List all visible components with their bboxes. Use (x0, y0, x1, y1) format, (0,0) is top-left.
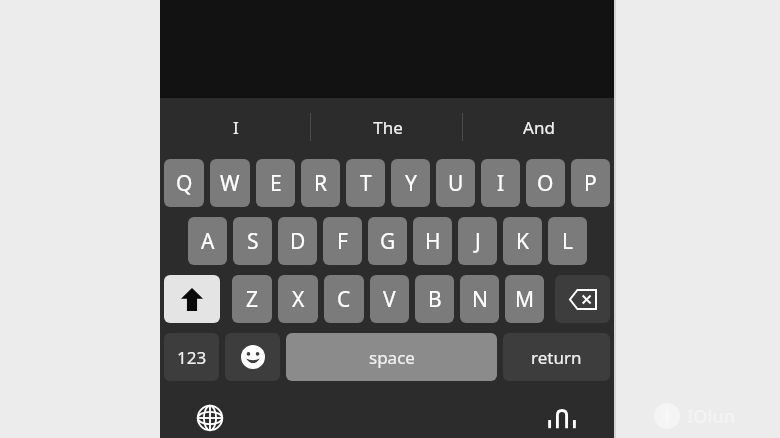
staticText: U (448, 169, 464, 198)
staticText: Y (405, 169, 417, 198)
button[interactable]: return (503, 333, 610, 381)
staticText: I (233, 116, 239, 139)
button[interactable]: V (370, 275, 409, 323)
button[interactable]: A (188, 217, 227, 265)
button[interactable]: U (436, 159, 475, 207)
staticText: And (523, 116, 555, 139)
button[interactable]: Shift (164, 275, 220, 323)
staticText: X (292, 285, 305, 314)
button[interactable]: Z (232, 275, 272, 323)
staticText: A (201, 227, 215, 256)
button[interactable]: G (368, 217, 407, 265)
button[interactable]: H (413, 217, 452, 265)
button[interactable]: S (233, 217, 272, 265)
button[interactable]: I (160, 98, 312, 156)
staticText: K (516, 227, 529, 256)
button[interactable]: And (463, 98, 614, 156)
staticText: P (584, 169, 597, 198)
button[interactable]: J (458, 217, 497, 265)
staticText: J (475, 227, 481, 256)
staticText: E (270, 169, 282, 198)
button[interactable]: N (460, 275, 499, 323)
button[interactable]: The (312, 98, 463, 156)
button[interactable]: C (324, 275, 364, 323)
button[interactable]: W (210, 159, 250, 207)
button[interactable]: Q (164, 159, 204, 207)
button[interactable]: T (346, 159, 385, 207)
staticText: space (369, 346, 415, 369)
staticText: The (373, 116, 403, 139)
staticText: B (428, 285, 442, 314)
button[interactable]: Voice input (545, 401, 579, 435)
button[interactable]: M (505, 275, 544, 323)
staticText: Q (176, 169, 193, 198)
staticText: N (472, 285, 488, 314)
staticText: R (314, 169, 328, 198)
button[interactable]: Y (391, 159, 430, 207)
staticText: I (497, 169, 505, 198)
button[interactable]: E (256, 159, 295, 207)
staticText: return (531, 346, 582, 369)
staticText: C (337, 285, 351, 314)
button[interactable]: O (526, 159, 565, 207)
button[interactable]: F (323, 217, 362, 265)
button[interactable]: X (278, 275, 318, 323)
staticText: H (425, 227, 441, 256)
staticText: T (360, 169, 372, 198)
button[interactable]: Change keyboard language (193, 401, 227, 435)
staticText: L (562, 227, 574, 256)
button[interactable]: 123 (164, 333, 219, 381)
staticText: O (537, 169, 554, 198)
button[interactable]: Backspace (555, 275, 610, 323)
staticText: D (290, 227, 306, 256)
staticText: G (380, 227, 396, 256)
staticText: Z (246, 285, 259, 314)
staticText: W (220, 169, 240, 198)
button[interactable]: K (503, 217, 542, 265)
staticText: F (337, 227, 348, 256)
staticText: M (515, 285, 535, 314)
staticText: 123 (177, 346, 207, 369)
button[interactable]: L (548, 217, 587, 265)
button[interactable]: space (286, 333, 497, 381)
button[interactable]: P (571, 159, 610, 207)
button[interactable]: D (278, 217, 317, 265)
button[interactable]: Emoji (225, 333, 280, 381)
staticText: V (383, 285, 396, 314)
staticText: S (247, 227, 259, 256)
button[interactable]: R (301, 159, 340, 207)
button[interactable]: I (481, 159, 520, 207)
button[interactable]: B (415, 275, 454, 323)
